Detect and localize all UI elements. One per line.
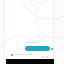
button[interactable] [11, 53, 33, 56]
button[interactable]: Forgot password [25, 42, 35, 43]
button[interactable]: Sign in [25, 46, 50, 51]
